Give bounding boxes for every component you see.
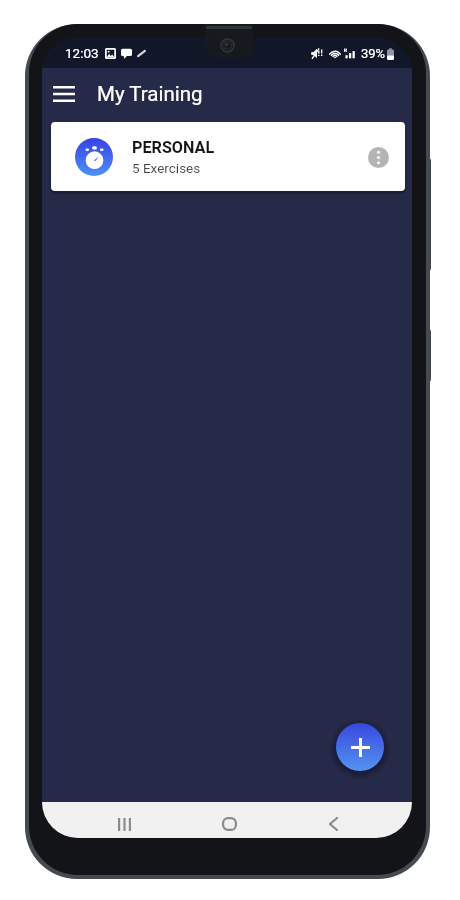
staticText: 5 Exercises (132, 160, 201, 176)
staticText: PERSONAL (132, 138, 215, 157)
button[interactable]: PERSONAL (51, 122, 405, 191)
button[interactable]: Add (336, 723, 384, 771)
staticText: My Training (97, 82, 203, 106)
button[interactable]: Recents (72, 811, 177, 837)
button[interactable]: Back (281, 811, 385, 837)
staticText: 12:03 (65, 45, 99, 61)
button[interactable]: Menu (43, 73, 85, 115)
button[interactable]: Home (177, 811, 281, 837)
staticText: 39% (361, 46, 386, 61)
button[interactable]: More options (358, 137, 398, 177)
